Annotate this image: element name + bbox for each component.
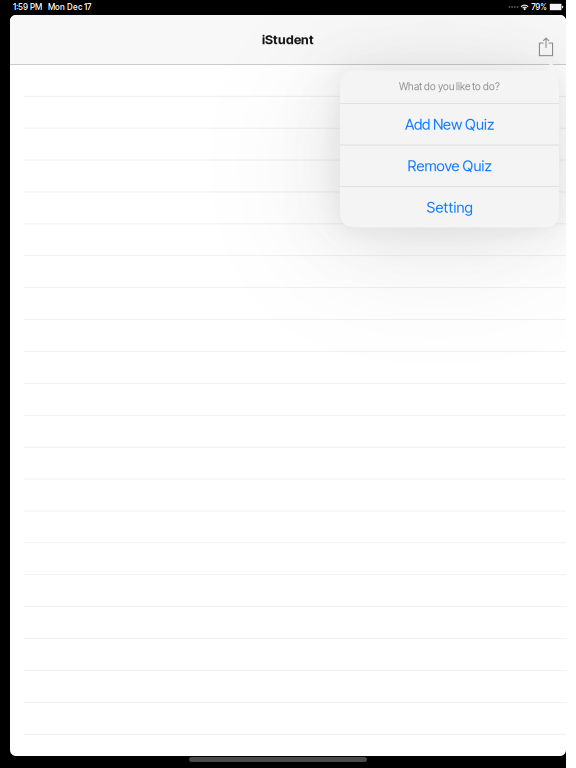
staticText: iStudent <box>262 32 314 47</box>
staticText: Remove Quiz <box>407 157 491 175</box>
staticText: Add New Quiz <box>405 115 494 133</box>
button[interactable]: Add New Quiz <box>340 104 559 145</box>
staticText: 79% <box>531 2 547 12</box>
button[interactable]: Setting <box>340 187 559 228</box>
staticText: Mon Dec 17 <box>48 2 91 12</box>
staticText: Setting <box>426 198 472 216</box>
button[interactable]: Share <box>526 15 566 64</box>
staticText: What do you like to do? <box>399 80 500 93</box>
staticText: 1:59 PM <box>13 2 42 12</box>
button[interactable]: Remove Quiz <box>340 145 559 186</box>
